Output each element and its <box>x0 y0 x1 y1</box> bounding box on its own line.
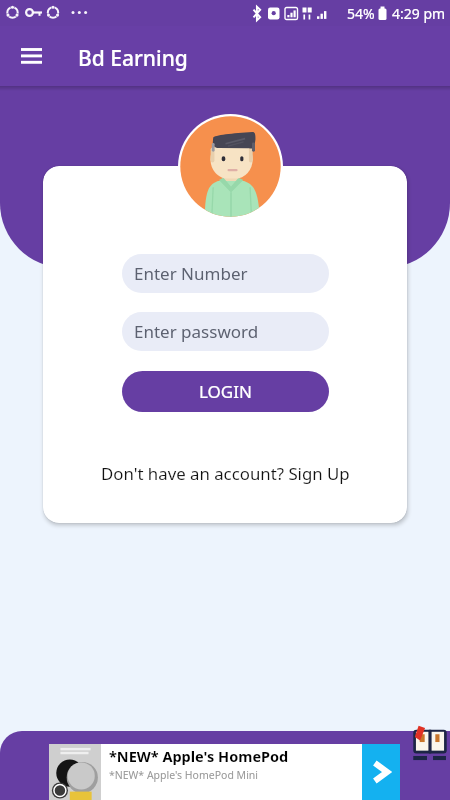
staticText: 4:29 pm <box>392 4 446 23</box>
staticText: Enter password <box>134 320 259 343</box>
button[interactable]: Enter password <box>122 312 329 351</box>
staticText: *NEW* Apple's HomePod <box>109 746 289 766</box>
button[interactable]: Don't have an account? Sign Up <box>95 458 356 489</box>
staticText: Enter Number <box>134 262 248 285</box>
staticText: Don't have an account? Sign Up <box>101 462 350 485</box>
button[interactable]: LOGIN <box>122 371 329 412</box>
staticText: LOGIN <box>199 380 252 403</box>
button[interactable]: Open navigation menu <box>10 36 52 78</box>
staticText: *NEW* Apple's HomePod Mini <box>109 768 259 782</box>
staticText: Bd Earning <box>78 44 188 73</box>
button[interactable]: Open advertisement <box>362 744 400 800</box>
button[interactable]: *NEW* Apple's HomePod <box>49 744 400 800</box>
staticText: 54% <box>347 4 375 23</box>
button[interactable]: Enter Number <box>122 254 329 293</box>
